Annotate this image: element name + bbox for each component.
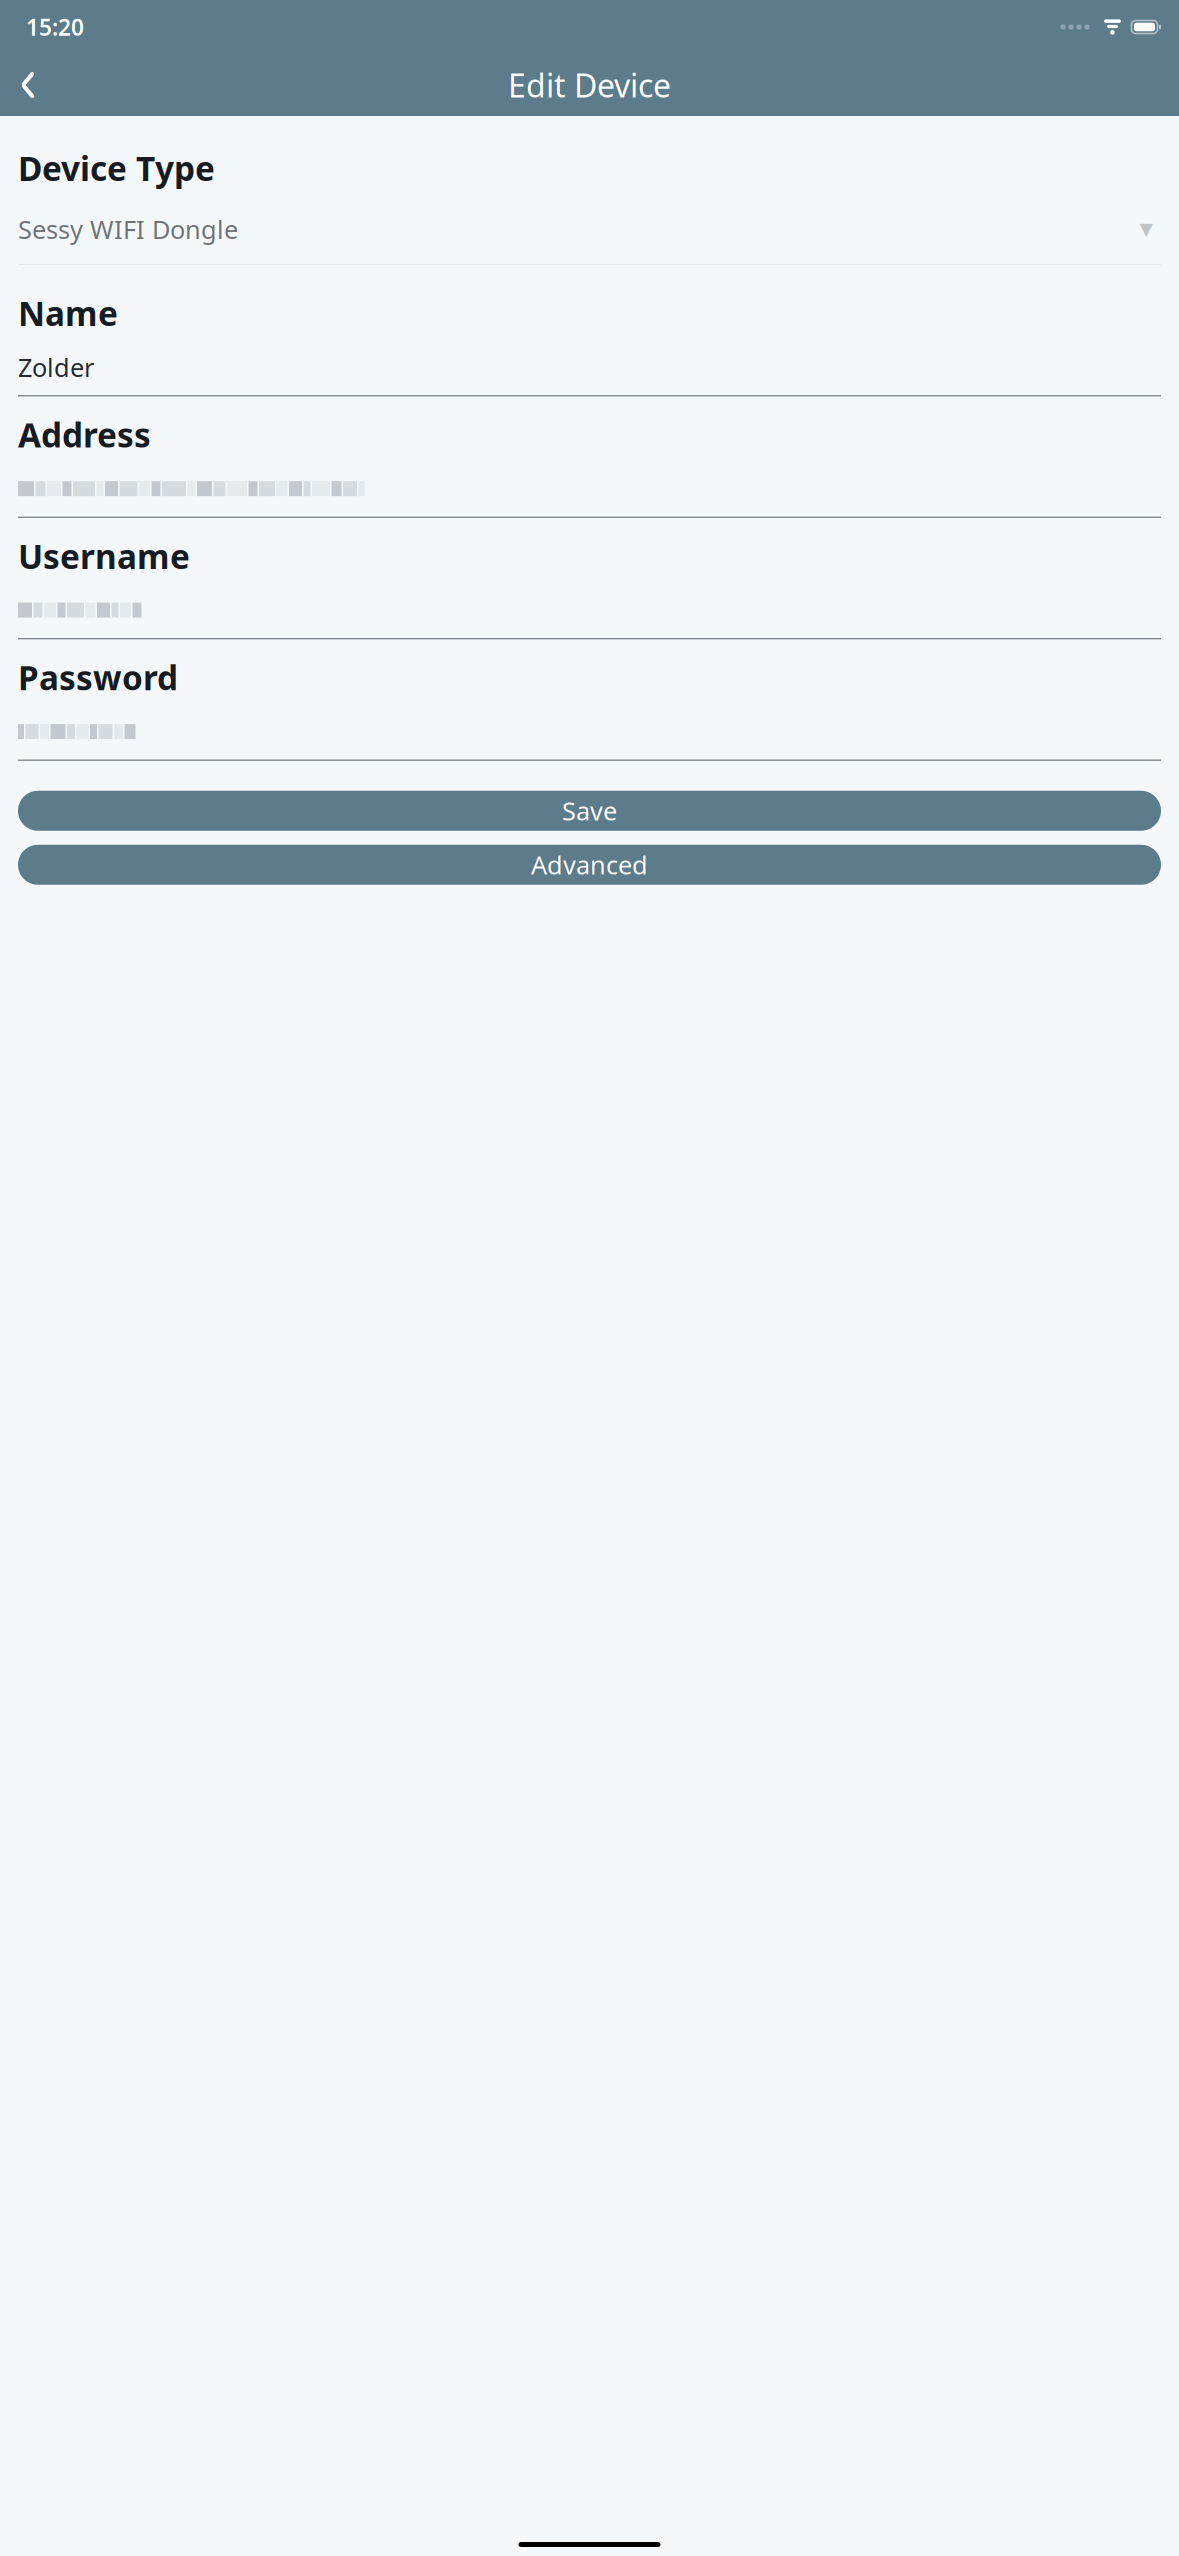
button[interactable]: Choose device type bbox=[1131, 217, 1161, 241]
staticText: Username bbox=[18, 534, 190, 578]
staticText: Advanced bbox=[531, 848, 648, 881]
button[interactable]: Save bbox=[18, 791, 1161, 831]
staticText: ▼ bbox=[1139, 219, 1152, 239]
staticText: 15:20 bbox=[26, 12, 84, 42]
staticText: Name bbox=[18, 291, 118, 335]
staticText: Address bbox=[18, 412, 151, 457]
staticText: Device Type bbox=[18, 146, 215, 190]
staticText: Edit Device bbox=[508, 64, 671, 106]
staticText: Sessy WIFI Dongle bbox=[18, 212, 238, 246]
staticText: Zolder bbox=[18, 350, 94, 384]
button[interactable]: Advanced bbox=[18, 845, 1161, 885]
button[interactable]: Back bbox=[0, 59, 56, 111]
staticText: Password bbox=[18, 655, 178, 700]
staticText: Save bbox=[562, 794, 617, 827]
